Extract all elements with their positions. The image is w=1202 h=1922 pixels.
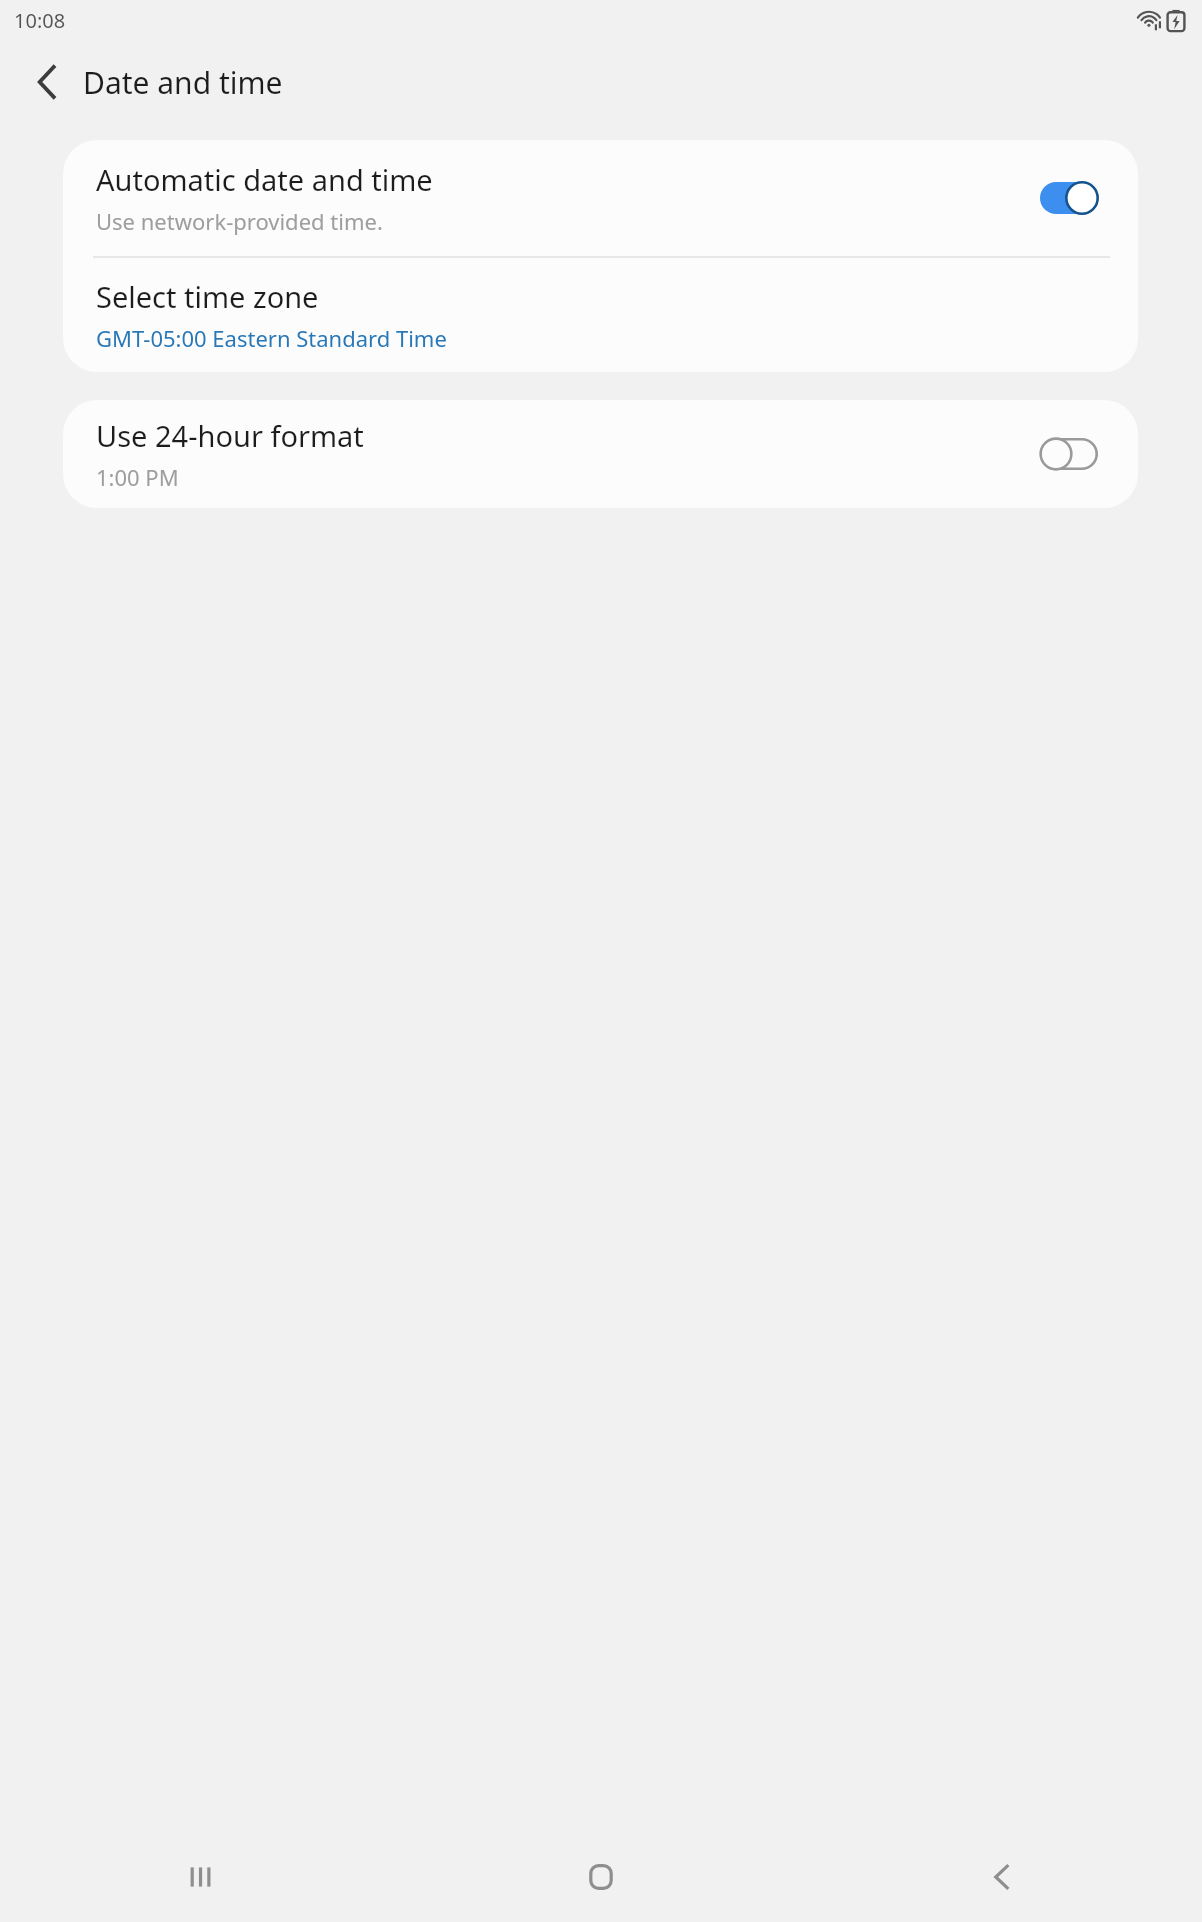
button[interactable]: Automatic date and time, on	[1040, 182, 1098, 214]
button[interactable]: Select time zone	[63, 258, 1138, 372]
button[interactable]: Use 24-hour format, off	[1040, 438, 1098, 470]
staticText: Automatic date and time	[96, 160, 433, 199]
staticText: GMT-05:00 Eastern Standard Time	[96, 323, 447, 353]
staticText: Use 24-hour format	[96, 416, 364, 455]
button[interactable]: Back	[801, 1832, 1202, 1922]
staticText: Select time zone	[96, 277, 319, 316]
staticText: 10:08	[14, 7, 66, 34]
button[interactable]: Home	[400, 1832, 801, 1922]
button[interactable]: Recent apps	[0, 1832, 400, 1922]
staticText: 1:00 PM	[96, 462, 179, 492]
button[interactable]: Automatic date and time	[63, 140, 1138, 256]
button[interactable]: Back	[18, 52, 78, 112]
staticText: Use network-provided time.	[96, 206, 383, 236]
button[interactable]: Use 24-hour format	[63, 400, 1138, 508]
staticText: Date and time	[83, 62, 283, 103]
